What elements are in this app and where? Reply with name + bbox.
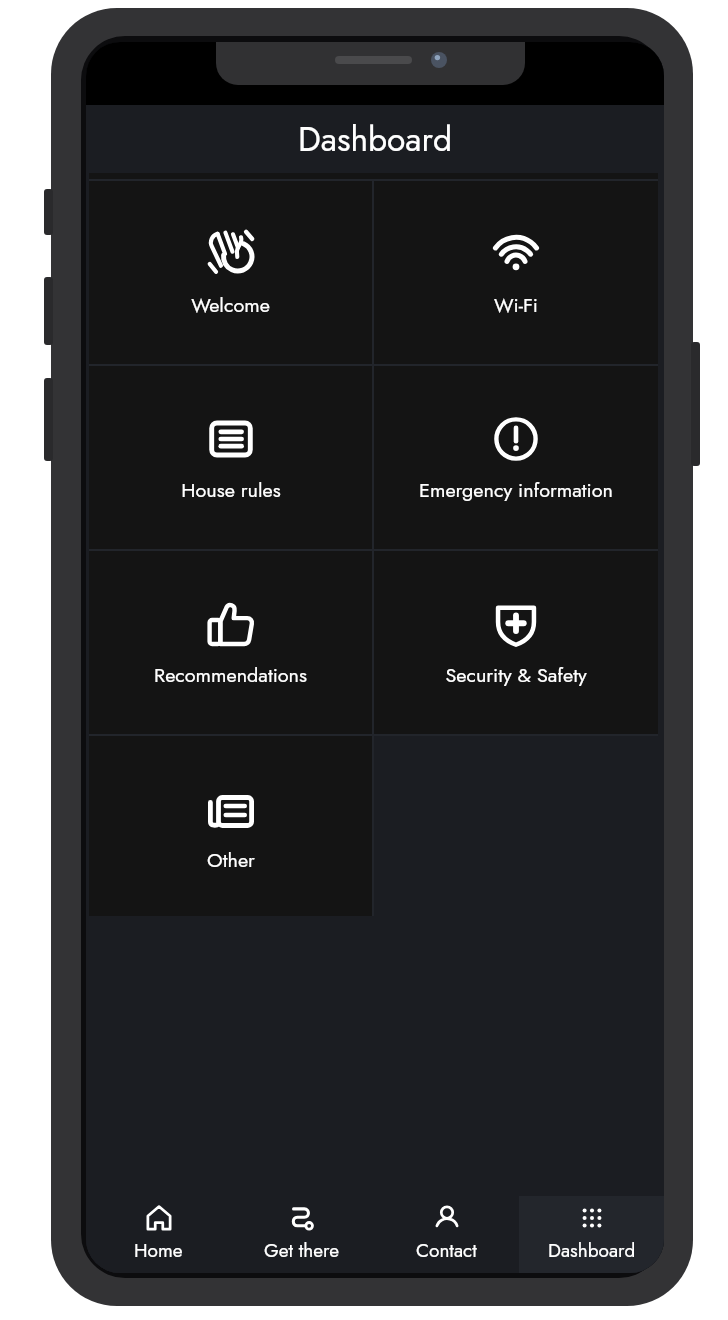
button[interactable]: Get there	[230, 1196, 374, 1273]
button[interactable]: Welcome	[89, 181, 372, 364]
button[interactable]: Recommendations	[89, 551, 372, 734]
staticText: Get there	[264, 1237, 340, 1264]
button[interactable]: Dashboard	[519, 1196, 664, 1273]
staticText: Home	[134, 1237, 183, 1264]
other: Home	[146, 1205, 172, 1231]
button[interactable]: Emergency information	[374, 366, 658, 549]
staticText: Dashboard	[548, 1237, 636, 1264]
other: Wi-Fi	[491, 229, 541, 279]
other: Security and Safety	[491, 599, 541, 649]
button[interactable]: House rules	[89, 366, 372, 549]
staticText: Wi-Fi	[494, 291, 538, 320]
staticText: Security & Safety	[445, 661, 587, 690]
staticText: Dashboard	[298, 115, 453, 163]
other: Other	[206, 784, 256, 834]
other: Welcome	[206, 229, 256, 279]
other: Recommendations	[206, 599, 256, 649]
button[interactable]: Security and Safety	[374, 551, 658, 734]
other: Get there	[289, 1205, 315, 1231]
other: Dashboard	[579, 1205, 605, 1231]
staticText: House rules	[181, 476, 281, 505]
button[interactable]: Contact	[374, 1196, 519, 1273]
other: Contact	[434, 1205, 460, 1231]
button[interactable]: Home	[86, 1196, 230, 1273]
other: House rules	[206, 414, 256, 464]
staticText: Recommendations	[154, 661, 307, 690]
staticText: Welcome	[191, 291, 270, 320]
staticText: Contact	[416, 1237, 477, 1264]
staticText: Other	[207, 846, 255, 875]
button[interactable]: Other	[89, 736, 372, 916]
staticText: Emergency information	[419, 476, 613, 505]
other: Emergency information	[491, 414, 541, 464]
button[interactable]: Wi-Fi	[374, 181, 658, 364]
